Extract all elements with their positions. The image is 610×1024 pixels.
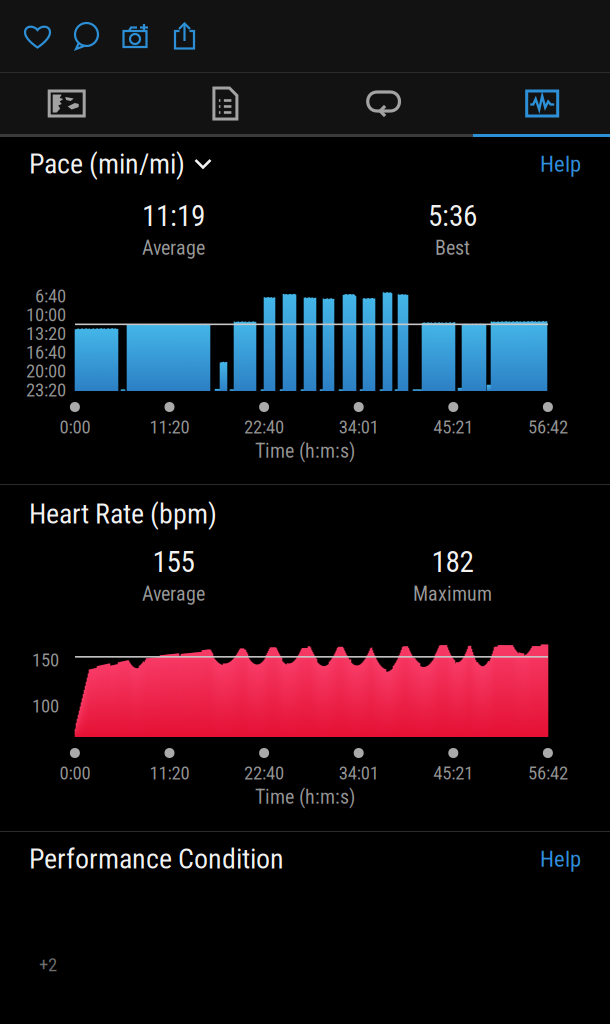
staticText: Time (h:m:s) bbox=[255, 439, 355, 463]
staticText: Maximum bbox=[413, 582, 492, 606]
staticText: 6:40 bbox=[35, 285, 66, 307]
staticText: Time (h:m:s) bbox=[255, 785, 355, 809]
button[interactable]: Add photo bbox=[111, 16, 160, 56]
staticText: 45:21 bbox=[433, 762, 473, 784]
staticText: 22:40 bbox=[244, 416, 284, 438]
staticText: 16:40 bbox=[26, 341, 66, 363]
staticText: +2 bbox=[39, 954, 57, 976]
staticText: 11:20 bbox=[149, 416, 189, 438]
staticText: Best bbox=[435, 236, 470, 260]
button[interactable]: Pace (min/mi) bbox=[29, 148, 212, 180]
button[interactable]: Details bbox=[133, 73, 317, 134]
staticText: 0:00 bbox=[59, 762, 90, 784]
button[interactable]: Comment bbox=[62, 16, 111, 56]
staticText: 11:20 bbox=[149, 762, 189, 784]
staticText: 22:40 bbox=[244, 762, 284, 784]
staticText: Pace (min/mi) bbox=[29, 148, 185, 180]
staticText: Average bbox=[142, 582, 205, 606]
staticText: 100 bbox=[32, 695, 59, 717]
staticText: 45:21 bbox=[433, 416, 473, 438]
staticText: 23:20 bbox=[26, 379, 66, 401]
button[interactable]: Help bbox=[540, 151, 581, 177]
staticText: 11:19 bbox=[142, 199, 205, 233]
staticText: 34:01 bbox=[339, 762, 379, 784]
button[interactable]: Share bbox=[160, 16, 209, 56]
staticText: 10:00 bbox=[26, 304, 66, 326]
staticText: 155 bbox=[152, 545, 194, 579]
staticText: 0:00 bbox=[59, 416, 90, 438]
staticText: 56:42 bbox=[528, 762, 568, 784]
staticText: Help bbox=[540, 846, 581, 872]
staticText: Help bbox=[540, 151, 581, 177]
staticText: 5:36 bbox=[428, 199, 477, 233]
staticText: Performance Condition bbox=[29, 843, 284, 875]
staticText: 20:00 bbox=[26, 360, 66, 382]
button[interactable]: Charts bbox=[451, 73, 610, 134]
staticText: 34:01 bbox=[339, 416, 379, 438]
staticText: 182 bbox=[431, 545, 473, 579]
button[interactable]: Help bbox=[540, 846, 581, 872]
button[interactable]: Map bbox=[0, 73, 133, 134]
button[interactable]: Like bbox=[13, 16, 62, 56]
button[interactable]: Laps bbox=[317, 73, 451, 134]
staticText: Average bbox=[142, 236, 205, 260]
staticText: Heart Rate (bpm) bbox=[29, 498, 217, 530]
staticText: 56:42 bbox=[528, 416, 568, 438]
staticText: 13:20 bbox=[26, 323, 66, 345]
staticText: 150 bbox=[32, 649, 59, 671]
